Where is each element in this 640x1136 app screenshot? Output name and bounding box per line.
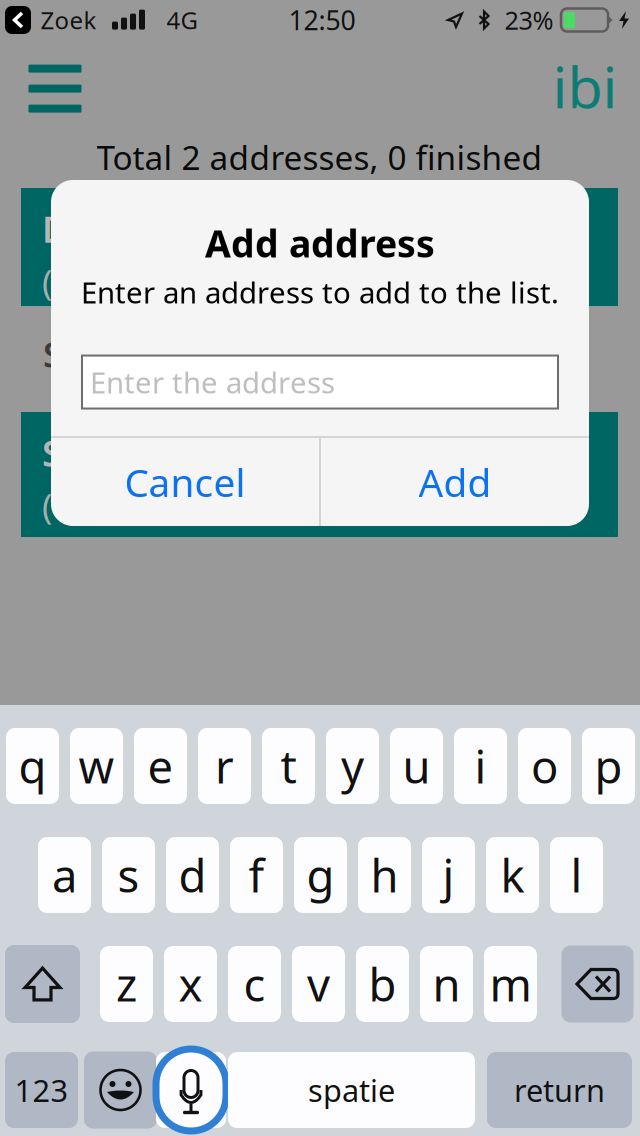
staticText: Enter an address to add to the list. bbox=[81, 272, 559, 311]
staticText: p bbox=[594, 736, 622, 796]
staticText: k bbox=[500, 845, 524, 905]
staticText: v bbox=[307, 954, 330, 1014]
button[interactable]: o bbox=[518, 728, 571, 804]
button[interactable]: h bbox=[358, 837, 411, 913]
button[interactable]: Back to Zoek bbox=[5, 6, 31, 34]
staticText: g bbox=[306, 845, 334, 905]
button[interactable]: b bbox=[356, 946, 409, 1022]
button[interactable]: Add bbox=[321, 438, 589, 526]
staticText: ibi bbox=[552, 48, 617, 124]
staticText: b bbox=[368, 954, 396, 1014]
staticText: a bbox=[52, 845, 77, 905]
button[interactable]: t bbox=[262, 728, 315, 804]
staticText: y bbox=[341, 736, 364, 796]
staticText: m bbox=[489, 954, 531, 1014]
button[interactable]: v bbox=[292, 946, 345, 1022]
button[interactable]: m bbox=[484, 946, 537, 1022]
button[interactable]: f bbox=[230, 837, 283, 913]
staticText: Dorpsstraat 12, Amsterdam bbox=[42, 205, 529, 253]
staticText: q bbox=[18, 736, 46, 796]
staticText: o bbox=[531, 736, 558, 796]
button[interactable]: e bbox=[134, 728, 187, 804]
staticText: (4.8 km) bbox=[42, 483, 171, 529]
button[interactable]: q bbox=[6, 728, 59, 804]
staticText: Cancel bbox=[124, 456, 245, 508]
button[interactable]: s bbox=[102, 837, 155, 913]
staticText: 4G bbox=[166, 4, 197, 36]
staticText: l bbox=[570, 845, 582, 905]
staticText: 123 bbox=[14, 1070, 68, 1110]
button[interactable]: n bbox=[420, 946, 473, 1022]
staticText: d bbox=[178, 845, 206, 905]
button[interactable]: k bbox=[486, 837, 539, 913]
button[interactable]: Delete bbox=[561, 945, 633, 1022]
button[interactable]: Dictation bbox=[154, 1049, 227, 1131]
staticText: Enter the address bbox=[90, 362, 335, 401]
staticText: x bbox=[178, 954, 202, 1014]
button[interactable]: u bbox=[390, 728, 443, 804]
staticText: Zoek bbox=[40, 4, 96, 36]
button[interactable]: d bbox=[166, 837, 219, 913]
button[interactable]: Dorpsstraat 12, Amsterdam bbox=[21, 188, 618, 306]
staticText: f bbox=[248, 845, 264, 905]
button[interactable]: spatie bbox=[228, 1052, 475, 1128]
button[interactable]: Stationsplein 4, Utrecht bbox=[21, 412, 618, 537]
staticText: w bbox=[78, 736, 114, 796]
button[interactable]: g bbox=[294, 837, 347, 913]
staticText: s bbox=[117, 845, 139, 905]
button[interactable]: j bbox=[422, 837, 475, 913]
button[interactable]: Menu bbox=[9, 43, 101, 135]
staticText: r bbox=[215, 736, 234, 796]
button[interactable]: Shift bbox=[5, 945, 80, 1023]
staticText: Stationsplein 4, Utrecht bbox=[42, 429, 456, 477]
staticText: e bbox=[147, 736, 173, 796]
staticText: (0.0 km) bbox=[42, 259, 171, 305]
button[interactable]: Cancel bbox=[51, 438, 319, 526]
staticText: spatie bbox=[308, 1070, 395, 1110]
button[interactable]: i bbox=[454, 728, 507, 804]
button[interactable]: Emoji bbox=[84, 1051, 157, 1128]
button[interactable]: x bbox=[164, 946, 217, 1022]
button[interactable]: r bbox=[198, 728, 251, 804]
staticText: Add address bbox=[205, 218, 435, 268]
button[interactable]: p bbox=[582, 728, 635, 804]
staticText: n bbox=[432, 954, 460, 1014]
staticText: i bbox=[474, 736, 486, 796]
staticText: h bbox=[370, 845, 398, 905]
button[interactable]: 123 bbox=[5, 1052, 78, 1128]
staticText: 12:50 bbox=[288, 2, 355, 38]
staticText: j bbox=[442, 845, 454, 905]
button[interactable]: w bbox=[70, 728, 123, 804]
button[interactable]: a bbox=[38, 837, 91, 913]
staticText: 23% bbox=[504, 3, 553, 37]
button[interactable]: z bbox=[100, 946, 153, 1022]
staticText: t bbox=[280, 736, 296, 796]
button[interactable]: l bbox=[550, 837, 603, 913]
button[interactable]: y bbox=[326, 728, 379, 804]
staticText: Add bbox=[418, 456, 491, 508]
button[interactable]: return bbox=[487, 1052, 632, 1128]
staticText: z bbox=[116, 954, 137, 1014]
button[interactable]: c bbox=[228, 946, 281, 1022]
staticText: c bbox=[243, 954, 265, 1014]
staticText: Total 2 addresses, 0 finished bbox=[96, 135, 542, 179]
staticText: u bbox=[402, 736, 430, 796]
staticText: return bbox=[514, 1070, 605, 1110]
staticText: Stop 1 of 2 is not yet started bbox=[43, 331, 515, 377]
